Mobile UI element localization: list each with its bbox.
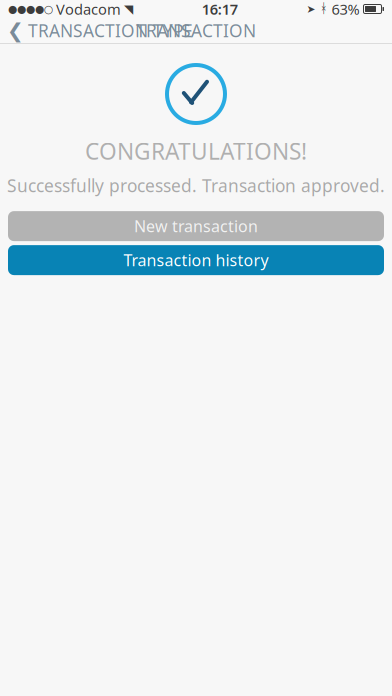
button[interactable]: ❮ xyxy=(0,15,193,46)
staticText: 16:17 xyxy=(202,0,238,19)
staticText: ◥ xyxy=(124,2,133,16)
staticText: ➤ xyxy=(306,3,315,15)
staticText: TRANSACTION TYPE xyxy=(28,19,193,42)
staticText: TRANSACTION xyxy=(136,19,256,42)
staticText: Successfully processed. Transaction appr… xyxy=(7,174,385,197)
staticText: New transaction xyxy=(134,215,258,237)
staticText: ●●●●○ xyxy=(8,3,53,15)
staticText: 63% xyxy=(331,0,359,19)
staticText: ❮ xyxy=(7,19,24,42)
staticText: Vodacom xyxy=(56,0,121,19)
staticText: CONGRATULATIONS! xyxy=(85,136,307,166)
button[interactable]: Transaction history xyxy=(8,245,384,275)
button[interactable]: New transaction xyxy=(8,211,384,241)
staticText: Transaction history xyxy=(123,249,268,271)
staticText: ᚼ xyxy=(319,2,327,15)
